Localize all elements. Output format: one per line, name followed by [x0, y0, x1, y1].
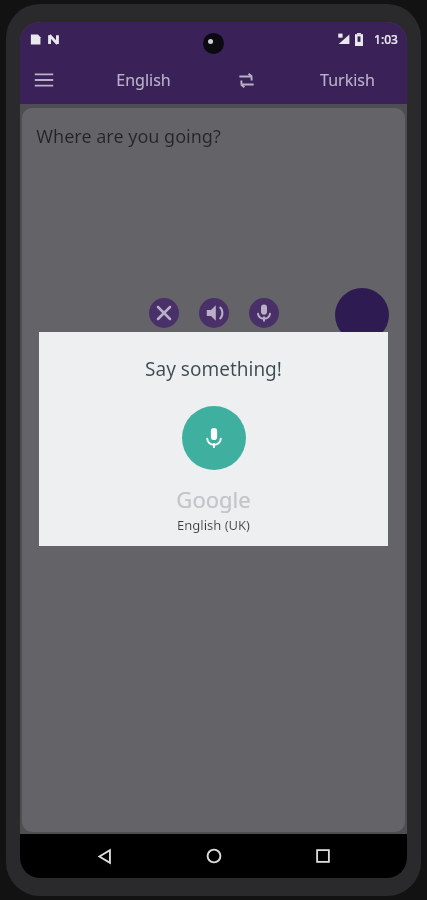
button[interactable]: English — [106, 61, 181, 99]
button[interactable]: Swap languages — [224, 58, 268, 102]
button[interactable]: Translate — [335, 288, 389, 342]
staticText: 1:03 — [374, 31, 398, 47]
staticText: English (UK) — [177, 516, 250, 534]
button[interactable]: Clear text — [149, 298, 179, 328]
staticText: Say something! — [145, 356, 282, 382]
button[interactable]: Open navigation menu — [20, 56, 68, 104]
button[interactable]: Recent apps — [297, 834, 349, 878]
button[interactable]: Back — [78, 834, 130, 878]
staticText: Google — [176, 484, 251, 514]
button[interactable]: Start voice input — [182, 406, 246, 470]
staticText: Where are you going? — [36, 124, 221, 149]
button[interactable]: Turkish — [310, 61, 385, 99]
staticText: Turkish — [320, 69, 375, 91]
staticText: English — [116, 69, 171, 91]
button[interactable]: Listen — [199, 298, 229, 328]
button[interactable]: Speak — [249, 298, 279, 328]
button[interactable]: Home — [188, 834, 240, 878]
